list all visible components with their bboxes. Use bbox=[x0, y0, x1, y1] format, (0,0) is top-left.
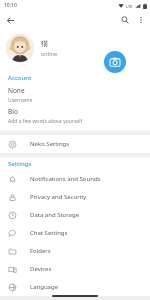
staticText: Add a few words about yourself bbox=[8, 118, 83, 125]
button[interactable]: Search bbox=[117, 12, 133, 28]
staticText: Notifications and Sounds bbox=[30, 175, 101, 183]
staticText: LTE bbox=[126, 4, 133, 9]
button[interactable]: Data and Storage bbox=[0, 206, 150, 224]
button[interactable]: Bio bbox=[0, 105, 150, 126]
staticText: online bbox=[41, 50, 58, 57]
staticText: Data and Storage bbox=[30, 211, 80, 219]
staticText: Bio bbox=[8, 107, 18, 116]
button[interactable]: Neko Settings bbox=[0, 135, 150, 153]
button[interactable]: Devices bbox=[0, 260, 150, 278]
staticText: Username bbox=[8, 97, 33, 104]
button[interactable]: Folders bbox=[0, 242, 150, 260]
button[interactable]: Back bbox=[2, 12, 18, 28]
staticText: 猫 bbox=[41, 39, 48, 48]
button[interactable]: Privacy and Security bbox=[0, 188, 150, 206]
staticText: Account bbox=[8, 74, 32, 82]
button[interactable]: Notifications and Sounds bbox=[0, 170, 150, 188]
staticText: Folders bbox=[30, 247, 51, 255]
button[interactable]: Set profile photo bbox=[104, 51, 126, 73]
staticText: Chat Settings bbox=[30, 229, 68, 237]
button[interactable]: None bbox=[0, 84, 150, 105]
staticText: Devices bbox=[30, 265, 52, 273]
staticText: Privacy and Security bbox=[30, 193, 87, 201]
staticText: 10:10 bbox=[4, 2, 17, 9]
button[interactable]: Language bbox=[0, 278, 150, 296]
staticText: Settings bbox=[8, 160, 32, 168]
staticText: Neko Settings bbox=[30, 140, 70, 148]
staticText: Language bbox=[30, 283, 59, 291]
button[interactable]: Chat Settings bbox=[0, 224, 150, 242]
button[interactable]: 猫 bbox=[0, 29, 150, 67]
staticText: None bbox=[8, 86, 25, 95]
button[interactable]: More options bbox=[133, 12, 149, 28]
